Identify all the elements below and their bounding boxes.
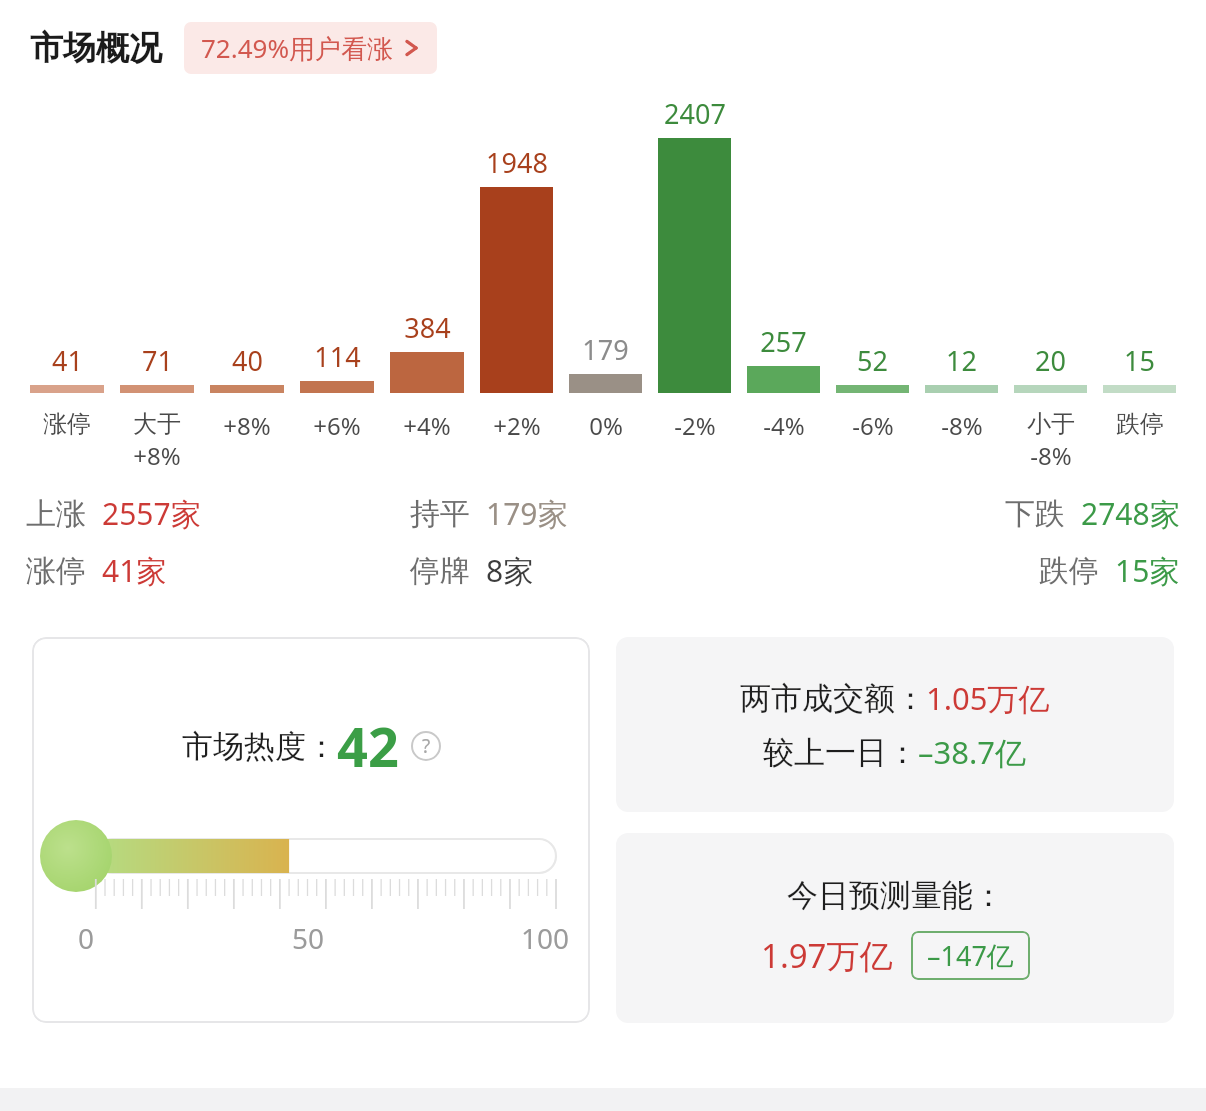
staticText: -8% (1030, 439, 1072, 472)
staticText: 50 (292, 919, 325, 957)
staticText: 今日预测量能： (787, 876, 1004, 915)
staticText: 涨停 (26, 552, 86, 590)
staticText: 52 (857, 342, 888, 379)
staticText: -8% (941, 409, 983, 442)
button[interactable]: 72.49%用户看涨 (184, 22, 437, 74)
staticText: 40 (232, 342, 263, 379)
button[interactable]: 257 (741, 74, 826, 442)
button[interactable]: 41 (24, 74, 110, 439)
staticText: 12 (946, 342, 977, 379)
staticText: 1.05万亿 (926, 677, 1050, 719)
staticText: +8% (223, 409, 271, 442)
staticText: 1948 (486, 144, 548, 181)
staticText: ? (422, 733, 431, 759)
staticText: 257 (760, 323, 807, 360)
button[interactable]: 40 (204, 74, 290, 442)
staticText: 1.97万亿 (761, 933, 893, 978)
staticText: 跌停 (1039, 552, 1099, 590)
button[interactable]: 20 (1008, 74, 1093, 472)
staticText: +8% (133, 439, 181, 472)
staticText: 41 (52, 342, 83, 379)
staticText: +2% (493, 409, 541, 442)
staticText: +4% (403, 409, 451, 442)
button[interactable]: 179 (563, 74, 648, 442)
button[interactable]: 71 (114, 74, 200, 472)
staticText: 179 (582, 331, 629, 368)
staticText: 市场热度： (182, 727, 337, 766)
button[interactable]: 52 (830, 74, 915, 442)
staticText: 72.49%用户看涨 (201, 30, 394, 66)
staticText: -6% (852, 409, 894, 442)
staticText: 179家 (486, 493, 568, 534)
staticText: 41家 (102, 550, 167, 591)
staticText: 15 (1124, 342, 1155, 379)
staticText: 2407 (664, 95, 726, 132)
staticText: +6% (313, 409, 361, 442)
button[interactable]: 15 (1097, 74, 1182, 439)
staticText: 2748家 (1081, 493, 1180, 534)
staticText: 2557家 (102, 493, 201, 534)
staticText: 小于 (1027, 409, 1075, 439)
staticText: 跌停 (1116, 409, 1164, 439)
staticText: 384 (404, 309, 451, 346)
staticText: 上涨 (26, 495, 86, 533)
staticText: 涨停 (43, 409, 91, 439)
staticText: 42 (337, 709, 399, 783)
staticText: 大于 (133, 409, 181, 439)
staticText: 8家 (486, 550, 534, 591)
button[interactable]: 114 (294, 74, 380, 442)
staticText: 20 (1035, 342, 1066, 379)
staticText: 下跌 (1005, 495, 1065, 533)
button[interactable]: 市场热度： (32, 637, 590, 1023)
staticText: 71 (142, 342, 173, 379)
button[interactable]: 今日预测量能： (616, 833, 1174, 1023)
button[interactable]: 1948 (474, 74, 559, 442)
button[interactable]: 384 (384, 74, 470, 442)
staticText: 两市成交额： (740, 679, 926, 718)
staticText: 0% (589, 409, 623, 442)
staticText: 100 (521, 919, 570, 957)
staticText: –147亿 (927, 937, 1014, 974)
staticText: 15家 (1115, 550, 1180, 591)
staticText: 114 (314, 338, 361, 375)
staticText: 市场概况 (30, 27, 162, 69)
staticText: –38.7亿 (918, 731, 1027, 773)
staticText: -4% (763, 409, 805, 442)
button[interactable]: 市场热度说明 (411, 731, 441, 761)
staticText: 停牌 (410, 552, 470, 590)
staticText: 较上一日： (763, 733, 918, 772)
staticText: -2% (674, 409, 716, 442)
button[interactable]: 两市成交额： (616, 637, 1174, 812)
button[interactable]: 12 (919, 74, 1004, 442)
staticText: 0 (78, 919, 95, 957)
button[interactable]: 2407 (652, 74, 737, 442)
staticText: 持平 (410, 495, 470, 533)
